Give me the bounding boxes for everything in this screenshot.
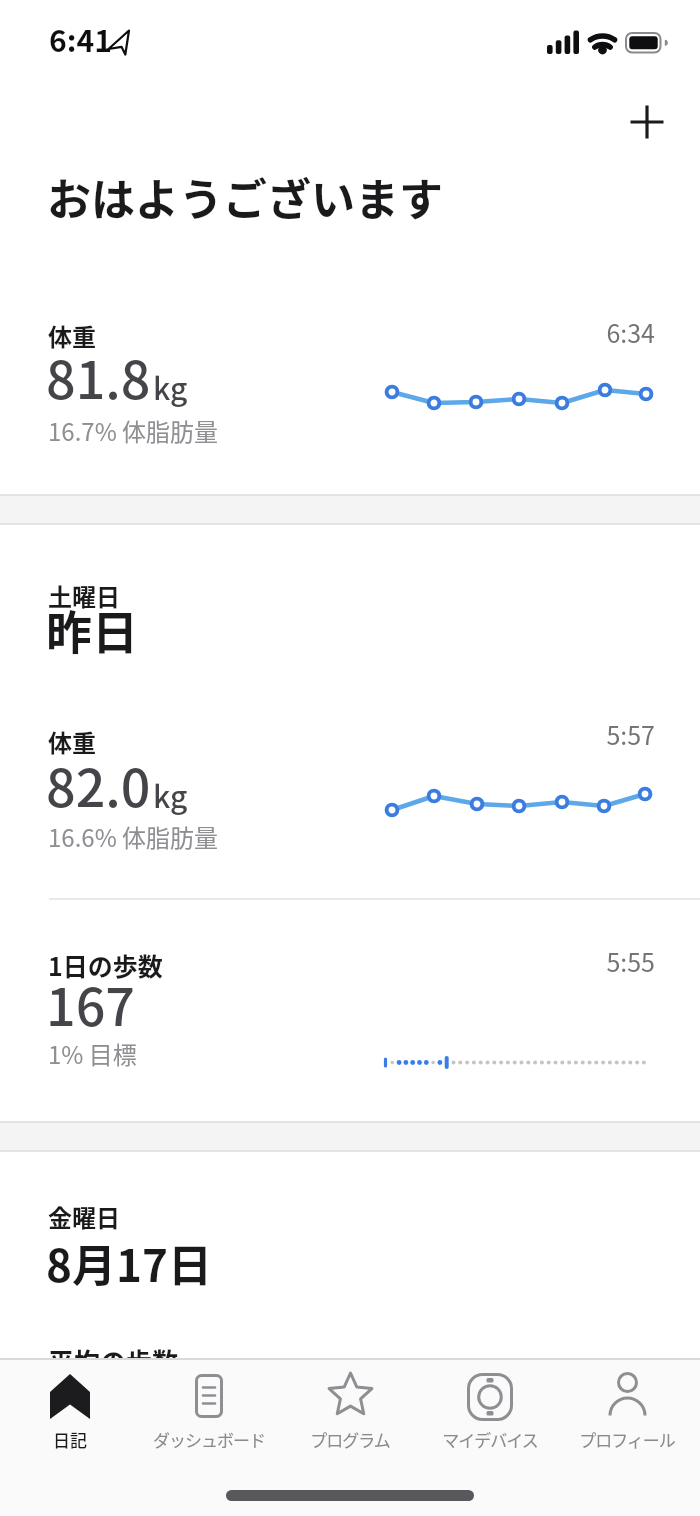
staticText: kg (153, 365, 188, 408)
staticText: 6:34 (435, 314, 655, 350)
staticText: 体重 (48, 724, 96, 759)
button[interactable] (613, 88, 681, 156)
staticText: 16.6% 体脂肪量 (48, 819, 219, 854)
staticText: 1% 目標 (48, 1036, 137, 1071)
button[interactable] (0, 705, 700, 899)
staticText: 81.8 (46, 339, 151, 414)
staticText: kg (153, 773, 188, 816)
staticText: 8月17日 (46, 1231, 212, 1295)
staticText: 5:57 (435, 716, 655, 752)
staticText: 5:55 (435, 943, 655, 979)
button[interactable] (140, 1360, 280, 1470)
staticText: マイデバイス (400, 1427, 580, 1452)
staticText: 昨日 (46, 596, 138, 663)
staticText: プロフィール (537, 1427, 700, 1452)
staticText: おはようございます (47, 165, 443, 229)
staticText: 日記 (0, 1427, 160, 1452)
staticText: ダッシュボード (119, 1427, 299, 1452)
staticText: 1日の歩数 (48, 947, 163, 983)
button[interactable] (560, 1360, 700, 1470)
staticText: 体重 (48, 318, 96, 353)
button[interactable] (0, 1360, 140, 1470)
button[interactable] (420, 1360, 560, 1470)
staticText: 167 (46, 966, 135, 1041)
staticText: 金曜日 (48, 1199, 120, 1234)
staticText: 平均の歩数 (48, 1342, 179, 1380)
staticText: 土曜日 (48, 578, 120, 613)
staticText: 16.7% 体脂肪量 (48, 413, 219, 448)
button[interactable] (0, 900, 700, 1121)
staticText: プログラム (260, 1427, 440, 1452)
staticText: 82.0 (46, 747, 151, 822)
button[interactable] (0, 300, 700, 494)
button[interactable] (280, 1360, 420, 1470)
staticText: 6:41 (49, 17, 112, 60)
